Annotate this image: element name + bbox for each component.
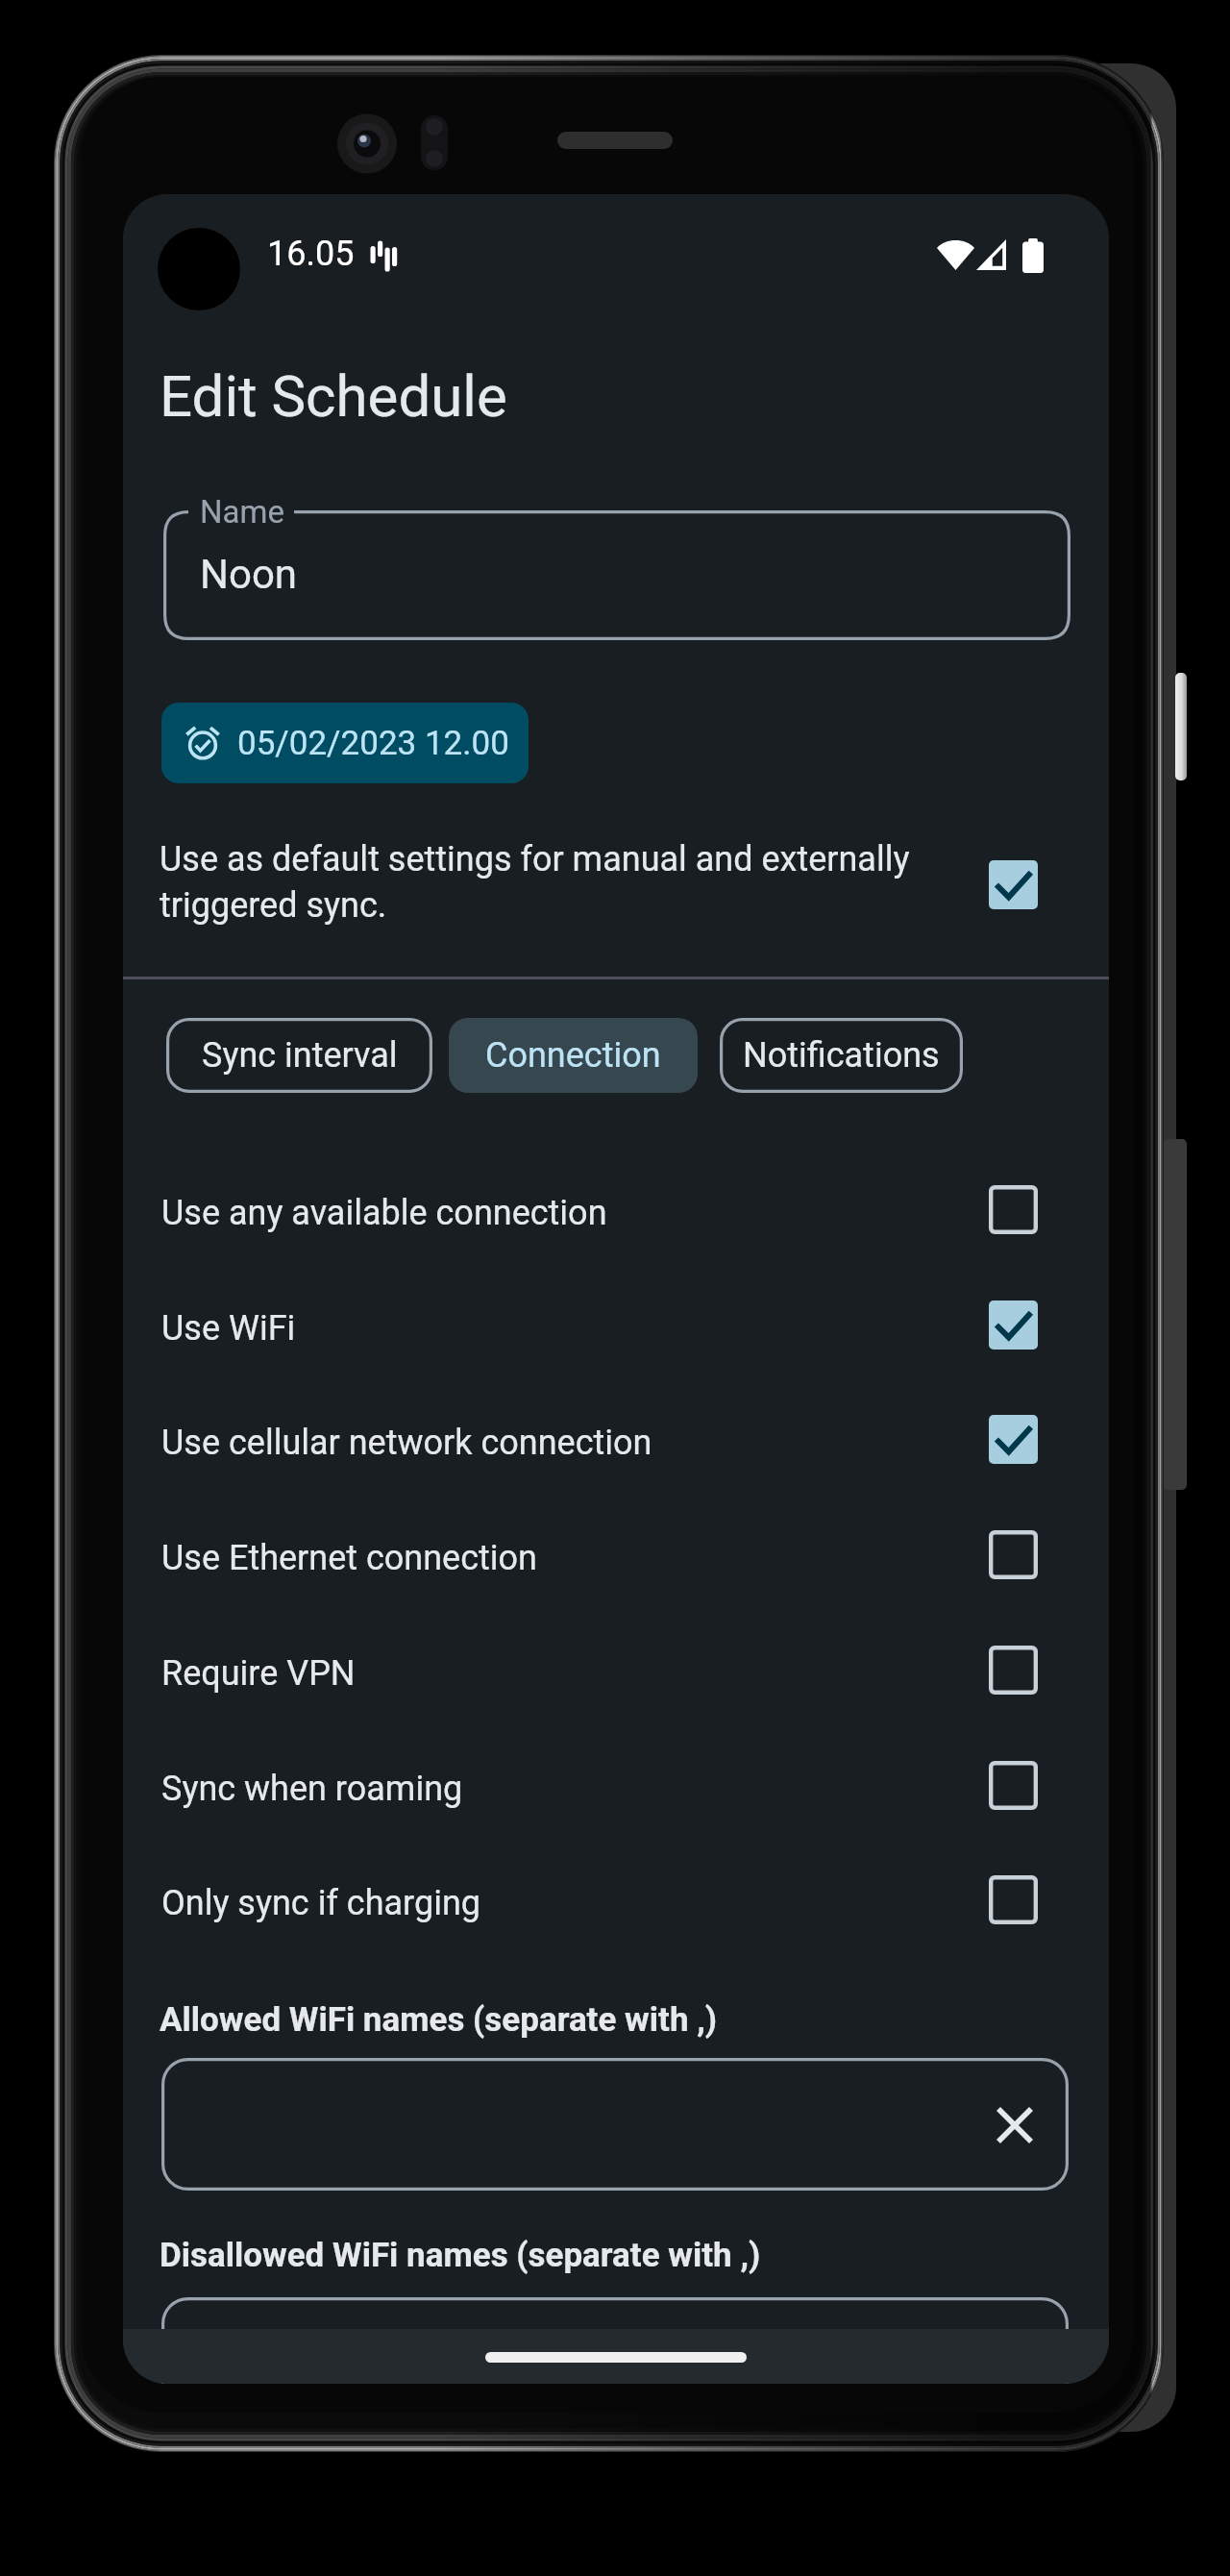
button[interactable]: Sync when roaming (123, 1732, 1109, 1846)
button[interactable]: Only sync if charging (123, 1846, 1109, 1961)
button[interactable]: Sync interval (166, 1018, 432, 1093)
button[interactable]: Clear (161, 2058, 1069, 2191)
staticText: Noon (200, 551, 298, 598)
button[interactable]: Use Ethernet connection (123, 1501, 1109, 1616)
staticText: Require VPN (161, 1653, 356, 1694)
button[interactable]: Require VPN (123, 1617, 1109, 1731)
button[interactable]: Use cellular network connection (123, 1386, 1109, 1500)
staticText: Edit Schedule (160, 362, 507, 430)
staticText: Use WiFi (161, 1308, 296, 1349)
staticText: Use any available connection (161, 1193, 607, 1233)
button[interactable]: Connection (449, 1018, 698, 1093)
staticText: Sync when roaming (161, 1769, 463, 1809)
other: Clear (998, 2109, 1031, 2142)
staticText: Disallowed WiFi names (separate with ,) (160, 2236, 761, 2275)
button[interactable]: Notifications (720, 1018, 963, 1093)
staticText: Use cellular network connection (161, 1423, 652, 1463)
button[interactable]: Use as default settings for manual and e… (123, 819, 1109, 944)
button[interactable]: 05/02/2023 12.00 (161, 703, 529, 783)
staticText: Connection (485, 1035, 661, 1076)
staticText: Name (200, 493, 284, 531)
staticText: Sync interval (202, 1035, 398, 1076)
button[interactable]: Noon (163, 510, 1070, 640)
staticText: Use as default settings for manual and e… (160, 839, 928, 925)
staticText: Only sync if charging (161, 1883, 481, 1923)
staticText: Notifications (743, 1035, 940, 1076)
button[interactable]: Clear (161, 2297, 1069, 2384)
staticText: 16.05 (267, 234, 355, 274)
staticText: 05/02/2023 12.00 (237, 724, 509, 763)
staticText: Allowed WiFi names (separate with ,) (160, 2000, 718, 2040)
staticText: Use Ethernet connection (161, 1538, 537, 1578)
button[interactable]: Use any available connection (123, 1156, 1109, 1271)
button[interactable]: Use WiFi (123, 1272, 1109, 1386)
